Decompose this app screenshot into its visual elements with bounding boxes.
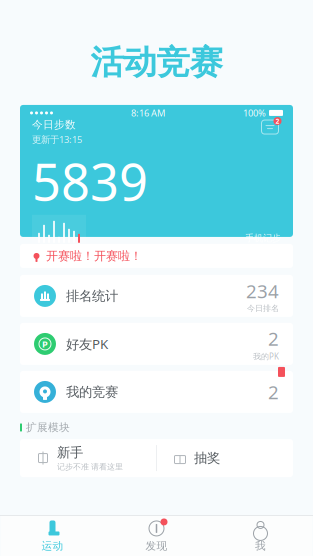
button[interactable]: 消息 xyxy=(259,118,281,136)
staticText: 今日步数 xyxy=(32,118,76,131)
staticText: 手机记步 xyxy=(245,232,281,244)
staticText: 2 xyxy=(275,117,279,125)
button[interactable]: 我的竞赛 xyxy=(20,371,293,413)
staticText: 记步不准 请看这里 xyxy=(57,462,123,472)
staticText: 运动 xyxy=(41,539,63,552)
staticText: 活动竞赛 xyxy=(90,42,222,83)
staticText: 我的PK xyxy=(253,351,279,362)
button[interactable]: 排名统计 xyxy=(20,275,293,317)
button[interactable]: 我 xyxy=(208,516,312,556)
button[interactable]: 新手 xyxy=(20,439,156,477)
staticText: 更新于13:15 xyxy=(32,133,82,146)
staticText: 开赛啦！开赛啦！ xyxy=(46,249,142,263)
staticText: 新手 xyxy=(57,444,83,461)
staticText: 234 xyxy=(246,279,279,303)
button[interactable]: 开赛啦！开赛啦！ xyxy=(20,244,293,268)
staticText: 2 xyxy=(268,379,279,404)
staticText: 100% xyxy=(243,107,266,119)
staticText: 8:16 AM xyxy=(131,107,165,119)
staticText: 2 xyxy=(268,326,279,351)
staticText: 抽奖 xyxy=(194,450,220,466)
staticText: 5839 xyxy=(32,147,148,215)
button[interactable]: 运动 xyxy=(0,516,104,556)
staticText: 排名统计 xyxy=(66,288,118,304)
button[interactable]: P xyxy=(20,323,293,365)
staticText: 扩展模块 xyxy=(26,421,70,434)
staticText: P xyxy=(42,338,48,350)
button[interactable]: 抽奖 xyxy=(157,439,293,477)
staticText: 好友PK xyxy=(66,335,108,353)
staticText: 我 xyxy=(255,539,266,552)
staticText: 我的竞赛 xyxy=(66,384,118,400)
staticText: 今日排名 xyxy=(247,303,279,313)
staticText: 发现 xyxy=(145,539,167,552)
button[interactable]: 发现 xyxy=(104,516,208,556)
